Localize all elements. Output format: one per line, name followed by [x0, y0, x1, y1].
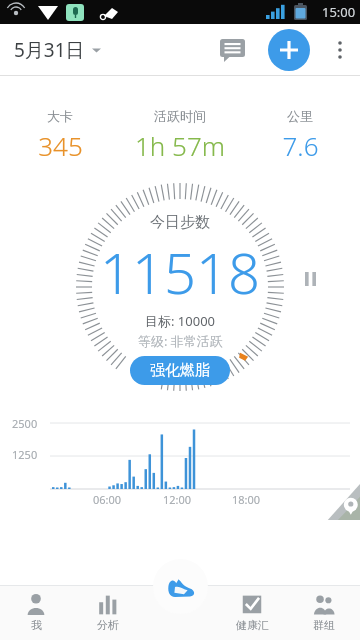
staticText: 7.6 [282, 128, 319, 163]
staticText: 15:00 [322, 3, 356, 21]
button[interactable]: 大卡 [0, 106, 120, 165]
staticText: 345 [38, 128, 83, 163]
button[interactable]: Messages [212, 30, 252, 70]
staticText: 分析 [97, 618, 119, 632]
staticText: 强化燃脂 [150, 361, 210, 380]
staticText: 健康汇 [236, 618, 269, 632]
staticText: 06:00 [93, 492, 122, 507]
staticText: 群组 [313, 618, 335, 632]
staticText: 1250 [12, 447, 38, 462]
staticText: 2500 [12, 416, 38, 431]
button[interactable]: 我 [0, 585, 72, 640]
staticText: 今日步数 [150, 213, 210, 232]
staticText: 18:00 [232, 492, 261, 507]
staticText: 大卡 [47, 108, 73, 124]
button[interactable]: Add [268, 29, 310, 71]
staticText: 活跃时间 [154, 108, 206, 124]
staticText: 12:00 [163, 492, 192, 507]
button[interactable]: 群组 [288, 585, 360, 640]
staticText: 5月31日 [14, 37, 85, 63]
button[interactable]: Pause [296, 265, 324, 293]
button[interactable]: Map [314, 480, 360, 520]
button[interactable]: 强化燃脂 [130, 356, 230, 385]
button[interactable]: 活跃时间 [120, 106, 240, 165]
button[interactable]: 健康汇 [216, 585, 288, 640]
button[interactable]: 分析 [72, 585, 144, 640]
staticText: 我 [31, 618, 42, 632]
button[interactable]: Activity [153, 559, 208, 614]
staticText: 等级: 非常活跃 [138, 332, 223, 350]
button[interactable]: 公里 [240, 106, 360, 165]
button[interactable]: 5月31日 [0, 31, 111, 69]
staticText: 目标: 10000 [145, 312, 216, 330]
staticText: 11518 [100, 234, 260, 310]
staticText: 公里 [287, 108, 313, 124]
button[interactable]: More options [320, 30, 360, 70]
staticText: 1h 57m [135, 128, 225, 163]
